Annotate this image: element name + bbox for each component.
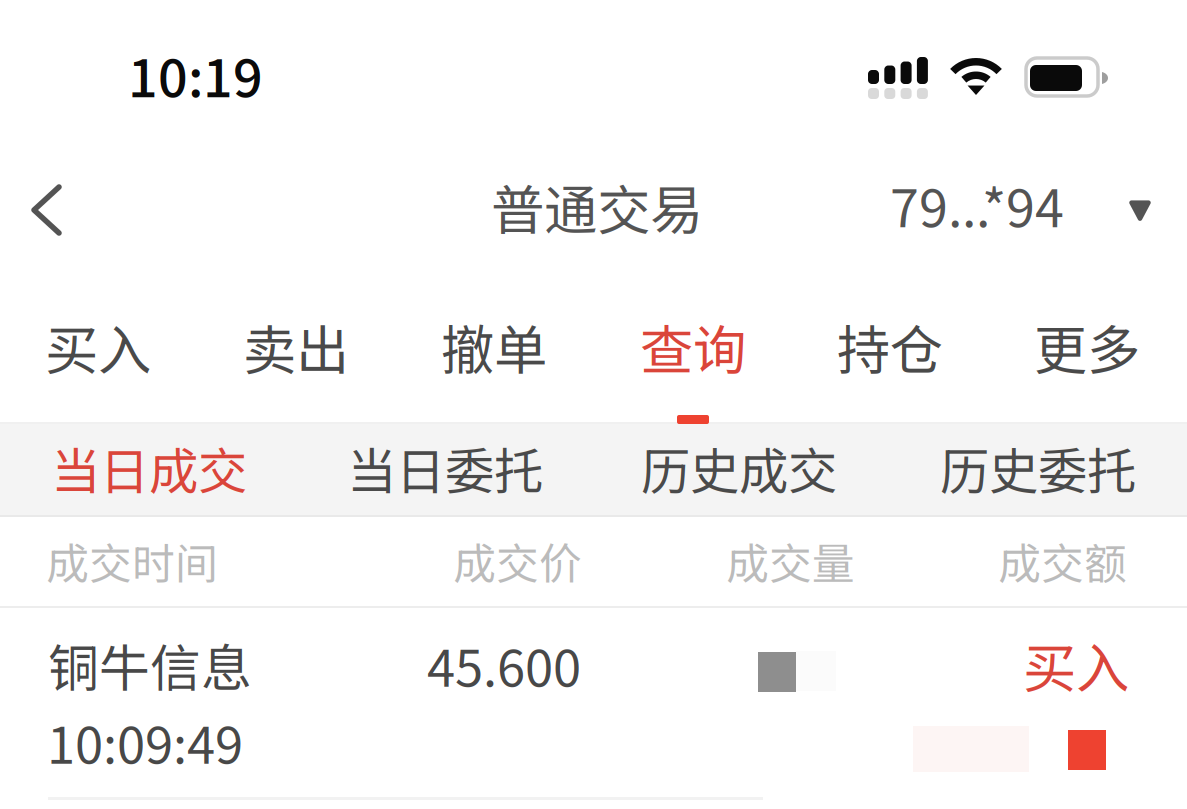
staticText: 成交时间 (46, 530, 218, 592)
staticText: 45.600 (427, 628, 581, 701)
staticText: 买入 (45, 308, 151, 385)
staticText: 持仓 (837, 308, 943, 385)
button[interactable]: 当日委托 (325, 421, 565, 514)
button[interactable]: 买入 (22, 299, 174, 430)
staticText: 普通交易 (491, 168, 703, 245)
staticText: 卖出 (243, 308, 349, 385)
staticText: 查询 (640, 308, 746, 385)
button[interactable]: 持仓 (814, 299, 966, 430)
staticText: 10:09:49 (47, 705, 243, 778)
staticText: 买入 (1023, 626, 1129, 703)
staticText: 成交量 (726, 530, 855, 592)
button[interactable]: 当日成交 (29, 421, 269, 514)
staticText: 成交额 (998, 530, 1127, 592)
staticText: 撤单 (441, 308, 547, 385)
staticText: 历史委托 (940, 432, 1136, 503)
button[interactable]: 历史成交 (619, 421, 859, 514)
button[interactable]: 撤单 (418, 299, 570, 430)
staticText: 10:19 (128, 37, 263, 112)
staticText: 79...*94 (890, 167, 1064, 242)
staticText: 更多 (1034, 308, 1140, 385)
button[interactable]: 更多 (1011, 299, 1163, 430)
button[interactable]: 历史委托 (918, 421, 1158, 514)
staticText: 当日委托 (347, 432, 543, 503)
staticText: 铜牛信息 (48, 628, 252, 701)
button[interactable]: 卖出 (220, 299, 372, 430)
staticText: 成交价 (453, 530, 582, 592)
staticText: 当日成交 (51, 432, 247, 503)
staticText: 历史成交 (641, 432, 837, 503)
button[interactable]: 查询 (617, 299, 769, 430)
button[interactable]: 铜牛信息 (0, 608, 1187, 799)
button[interactable]: 79...*94 (874, 151, 1167, 258)
button[interactable]: Back (14, 168, 79, 252)
